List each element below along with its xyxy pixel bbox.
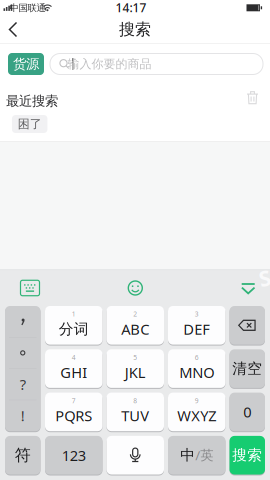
button[interactable]: 2 <box>106 306 164 345</box>
staticText: ? <box>20 374 26 394</box>
button[interactable] <box>106 436 164 474</box>
button[interactable]: 8 <box>106 393 164 431</box>
button[interactable]: 6 <box>168 349 225 388</box>
staticText: 最近搜索 <box>6 93 58 109</box>
button[interactable]: 3 <box>168 306 225 345</box>
button[interactable]: 输入你要的商品 <box>50 53 263 74</box>
button[interactable]: 4 <box>45 349 102 388</box>
staticText: PQRS <box>55 406 92 425</box>
button[interactable]: 123 <box>45 436 102 474</box>
staticText: MNO <box>179 363 214 382</box>
staticText: 4 <box>72 353 76 362</box>
staticText: 14:17 <box>115 0 146 15</box>
button[interactable] <box>5 337 40 368</box>
button[interactable]: 货源 <box>8 53 44 75</box>
staticText: 中国联通 <box>9 2 45 14</box>
staticText: 5 <box>133 353 137 362</box>
staticText: 搜索 <box>232 446 262 464</box>
staticText: 8 <box>133 396 137 405</box>
staticText: WXYZ <box>177 406 216 425</box>
button[interactable] <box>127 280 143 296</box>
button[interactable]: 符 <box>5 436 40 474</box>
staticText: GHI <box>60 363 87 382</box>
staticText: / <box>195 446 200 464</box>
staticText: 7 <box>72 396 76 405</box>
staticText: ! <box>21 406 25 425</box>
button[interactable]: ! <box>5 400 40 431</box>
staticText: 2 <box>133 310 137 318</box>
staticText: 困了 <box>18 117 42 131</box>
button[interactable]: 9 <box>168 393 225 431</box>
button[interactable] <box>4 19 28 39</box>
staticText: 清空 <box>232 360 262 378</box>
staticText: 符 <box>15 445 31 465</box>
staticText: 中 <box>180 446 195 464</box>
button[interactable]: 困了 <box>12 115 47 133</box>
staticText: 英 <box>200 447 213 463</box>
staticText: 1 <box>72 310 76 318</box>
staticText: 123 <box>62 445 86 465</box>
button[interactable]: 5 <box>106 349 164 388</box>
button[interactable]: 搜索 <box>229 436 265 474</box>
button[interactable]: 中 <box>168 436 225 474</box>
staticText: DEF <box>183 319 210 339</box>
button[interactable]: 0 <box>229 393 265 431</box>
button[interactable] <box>5 306 40 337</box>
staticText: JKL <box>125 363 146 382</box>
staticText: 搜索 <box>119 20 151 39</box>
staticText: 分词 <box>59 320 89 338</box>
staticText: 9 <box>195 396 199 405</box>
staticText: 输入你要的商品 <box>67 57 151 71</box>
staticText: S <box>259 264 270 292</box>
button[interactable]: 清空 <box>229 349 265 388</box>
button[interactable]: 7 <box>45 393 102 431</box>
button[interactable] <box>229 306 265 345</box>
staticText: TUV <box>121 406 149 425</box>
staticText: 0 <box>243 402 251 422</box>
staticText: 6 <box>195 353 199 362</box>
staticText: ABC <box>121 319 149 339</box>
staticText: 3 <box>195 310 199 318</box>
button[interactable]: ? <box>5 369 40 400</box>
button[interactable] <box>246 90 259 104</box>
button[interactable]: 1 <box>45 306 102 345</box>
button[interactable] <box>241 283 255 294</box>
staticText: 货源 <box>13 56 39 72</box>
button[interactable] <box>20 280 39 296</box>
